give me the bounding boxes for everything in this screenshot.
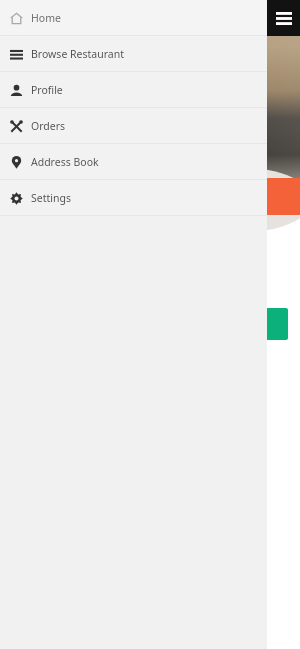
button[interactable]: Address Book — [0, 144, 267, 179]
staticText: Home — [31, 11, 61, 25]
staticText: Browse Restaurant — [31, 47, 124, 61]
button[interactable]: Settings — [0, 180, 267, 215]
button[interactable]: Browse Restaurant — [0, 36, 267, 71]
button[interactable]: Orders — [0, 108, 267, 143]
button[interactable]: Address — [0, 178, 300, 215]
staticText: Settings — [31, 191, 71, 205]
button[interactable]: Home — [0, 0, 267, 35]
button[interactable]: Profile — [0, 72, 267, 107]
staticText: Orders — [31, 119, 66, 133]
button[interactable] — [12, 308, 288, 340]
staticText: Profile — [31, 83, 63, 97]
button[interactable]: Open navigation menu — [267, 0, 300, 36]
staticText: Address Book — [31, 155, 99, 169]
